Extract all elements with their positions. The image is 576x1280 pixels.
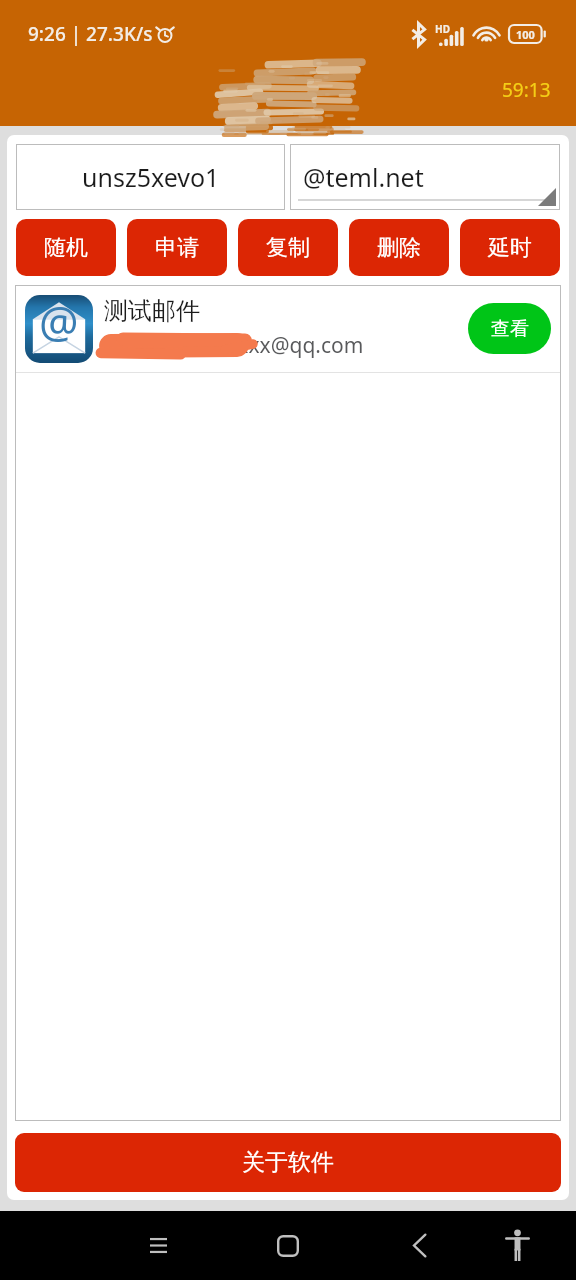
staticText: @teml.net [303, 160, 424, 194]
button[interactable]: @ [15, 285, 561, 372]
button[interactable]: 关于软件 [15, 1133, 561, 1192]
staticText: @ [39, 291, 79, 351]
staticText: 100 [516, 27, 535, 42]
button[interactable]: unsz5xevo1 [16, 144, 285, 210]
staticText: 延时 [488, 234, 532, 262]
button[interactable]: 删除 [349, 219, 449, 276]
staticText: 查看 [491, 317, 529, 341]
staticText: unsz5xevo1 [82, 160, 220, 194]
staticText: 申请 [155, 234, 199, 262]
staticText: 随机 [44, 234, 88, 262]
staticText: 删除 [377, 234, 421, 262]
button[interactable]: Recent apps [108, 1211, 208, 1280]
button[interactable]: 延时 [460, 219, 560, 276]
button[interactable]: 申请 [127, 219, 227, 276]
staticText: 复制 [266, 234, 310, 262]
button[interactable]: Back [369, 1211, 469, 1280]
staticText: 9:26 | 27.3K/s [28, 21, 153, 47]
button[interactable]: Home [238, 1211, 338, 1280]
button[interactable]: 复制 [238, 219, 338, 276]
button[interactable]: Accessibility [467, 1211, 567, 1280]
staticText: 59:13 [502, 77, 551, 103]
button[interactable]: 随机 [16, 219, 116, 276]
button[interactable]: Domain selector [290, 144, 560, 210]
staticText: 测试邮件 [104, 296, 200, 326]
staticText: HD [435, 22, 450, 36]
button[interactable]: 查看 [468, 303, 551, 354]
staticText: xxxxxxxxxxxxxxx@qq.com [104, 331, 364, 360]
staticText: 关于软件 [242, 1148, 334, 1177]
